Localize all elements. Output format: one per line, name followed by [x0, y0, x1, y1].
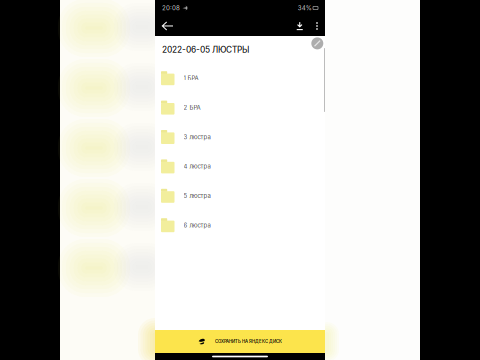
button[interactable]: 2 БРА — [155, 93, 325, 122]
staticText: 6 люстра — [183, 222, 210, 229]
staticText: 1 БРА — [183, 75, 198, 82]
button[interactable]: 5 люстра — [155, 181, 325, 210]
button[interactable]: Back — [155, 16, 176, 36]
button[interactable]: Edit — [311, 37, 323, 49]
staticText: 5 люстра — [183, 192, 210, 199]
staticText: 2022-06-05 ЛЮСТРЫ — [162, 45, 249, 55]
staticText: СОХРАНИТЬ НА ЯНДЕКС ДИСК — [215, 339, 282, 344]
staticText: 4 люстра — [183, 163, 210, 170]
button[interactable]: 4 люстра — [155, 152, 325, 181]
button[interactable]: 1 БРА — [155, 63, 325, 93]
button[interactable]: 6 люстра — [155, 210, 325, 240]
button[interactable]: Download — [289, 16, 310, 36]
staticText: 3 люстра — [183, 133, 210, 141]
button[interactable]: 3 люстра — [155, 122, 325, 152]
button[interactable]: СОХРАНИТЬ НА ЯНДЕКС ДИСК — [155, 330, 325, 353]
staticText: 2 БРА — [183, 104, 200, 111]
staticText: 34% — [298, 4, 312, 12]
button[interactable]: More options — [310, 16, 324, 36]
staticText: 20:08 — [162, 4, 180, 12]
